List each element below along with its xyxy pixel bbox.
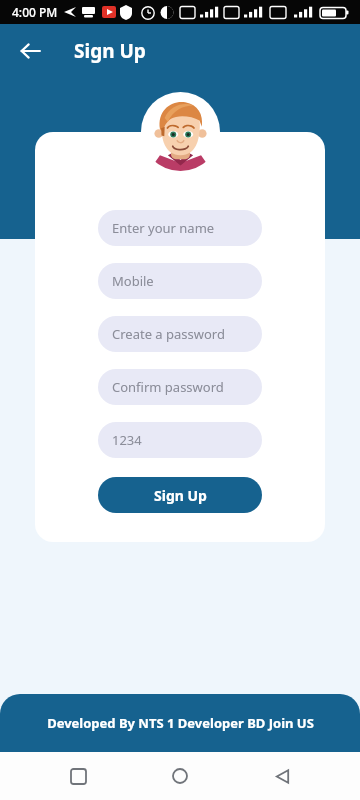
staticText: Mobile [112, 272, 154, 290]
staticText: Developed By NTS 1 Developer BD Join US [47, 714, 314, 732]
staticText: Sign Up [74, 38, 146, 64]
button[interactable]: Developed By NTS 1 Developer BD Join US [0, 694, 360, 752]
button[interactable]: Mobile [98, 263, 262, 299]
button[interactable]: Create a password [98, 316, 262, 352]
button[interactable]: Enter your name [98, 210, 262, 246]
button[interactable]: Confirm password [98, 369, 262, 405]
button[interactable]: Home [156, 752, 204, 800]
staticText: 1234 [112, 431, 142, 449]
staticText: Create a password [112, 325, 225, 343]
button[interactable]: Back [12, 33, 48, 69]
staticText: 4:00 PM [12, 4, 58, 20]
button[interactable]: 1234 [98, 422, 262, 458]
button[interactable]: Back [258, 752, 306, 800]
button[interactable]: Recents [54, 752, 102, 800]
button[interactable]: Sign Up [98, 477, 262, 513]
staticText: Enter your name [112, 219, 215, 237]
staticText: Confirm password [112, 378, 224, 396]
staticText: Sign Up [154, 486, 207, 505]
